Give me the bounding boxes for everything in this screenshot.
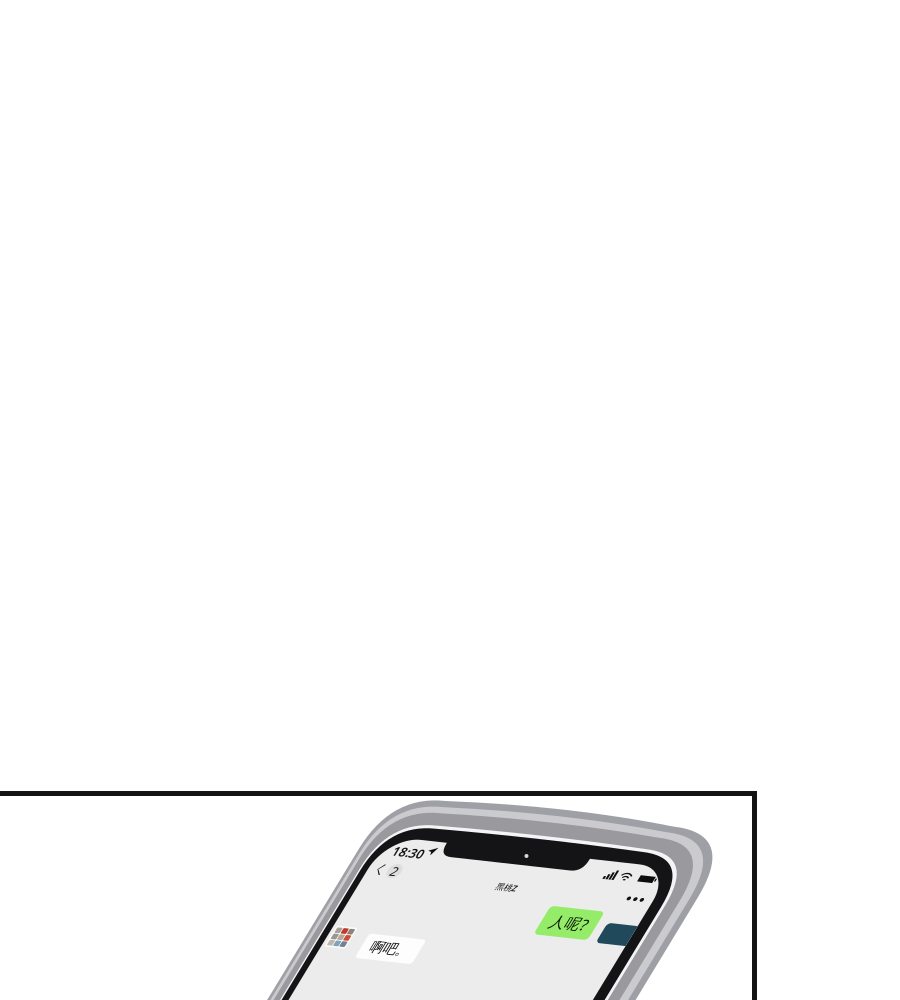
button[interactable]: Back, 2 unread [397, 861, 421, 875]
button[interactable]: More [647, 867, 664, 871]
staticText: 18:30 [401, 841, 432, 857]
staticText: 黑桃Z [518, 866, 539, 877]
